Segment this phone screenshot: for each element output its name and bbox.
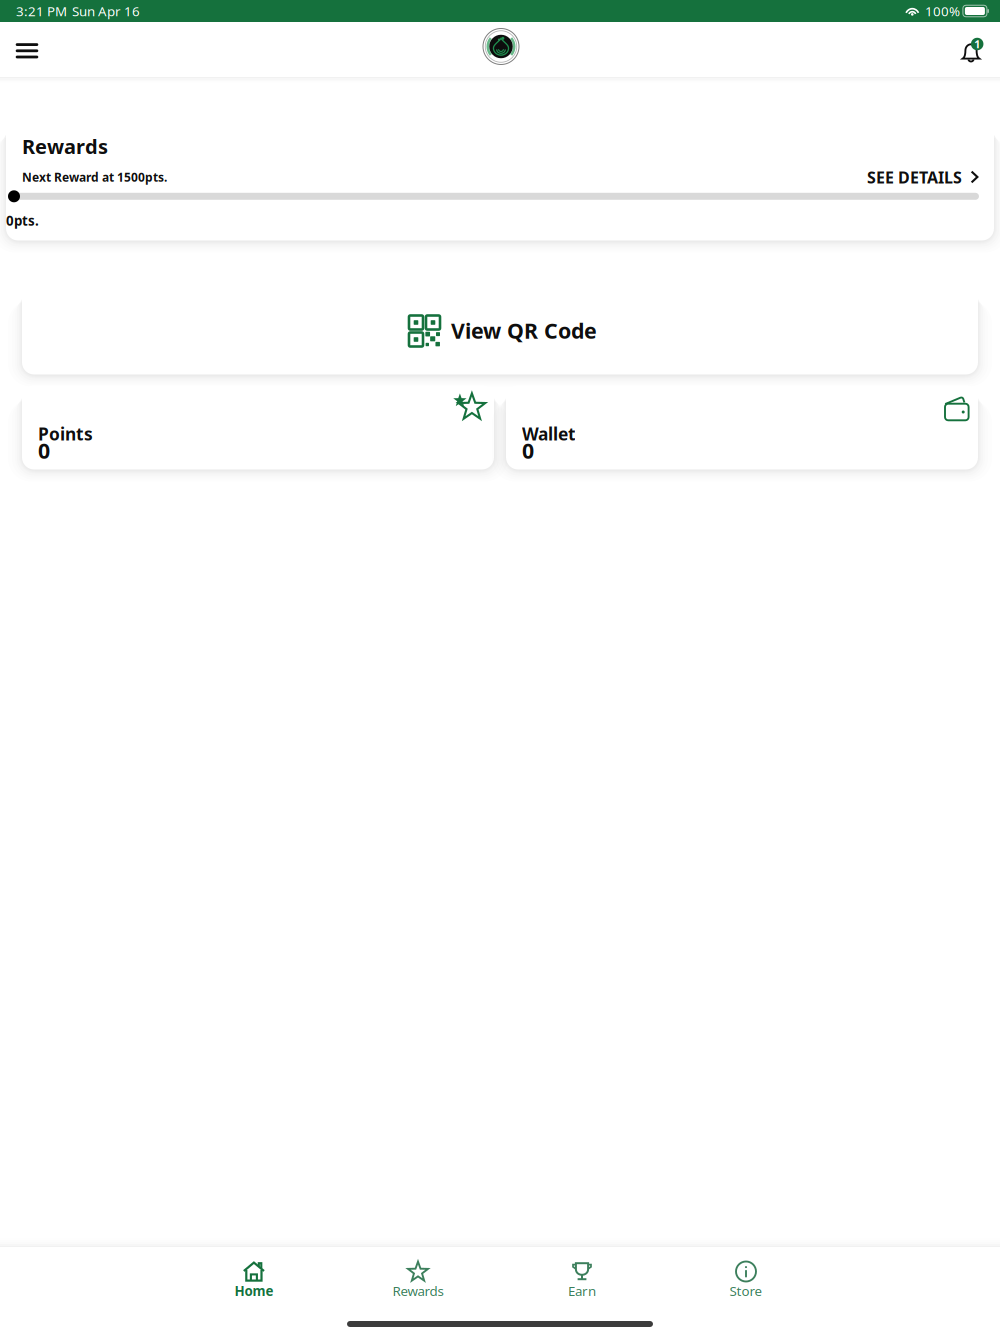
staticText: Earn [568,1282,596,1300]
staticText: 3:21 PM [16,2,67,20]
staticText: Points [38,422,93,445]
staticText: Sun Apr 16 [72,2,140,20]
staticText: Rewards [22,133,108,160]
staticText: View QR Code [451,316,597,345]
staticText: 0pts. [6,212,39,229]
staticText: 100% [925,2,960,20]
staticText: Home [234,1282,273,1300]
staticText: SEE DETAILS [867,167,962,188]
button[interactable]: Home [172,1261,336,1300]
button[interactable]: Notifications [946,22,996,77]
staticText: Store [729,1282,762,1300]
staticText: 0 [522,436,534,464]
staticText: 1 [974,37,980,51]
staticText: 0 [38,436,50,464]
button[interactable]: View QR Code [22,286,978,374]
button[interactable]: SEE DETAILS [867,167,994,188]
staticText: Wallet [522,422,576,445]
button[interactable]: Rewards [336,1261,500,1300]
button[interactable]: Store [664,1261,828,1300]
button[interactable]: Earn [500,1261,664,1300]
staticText: Next Reward at 1500pts. [22,169,167,185]
button[interactable]: Menu [2,22,52,77]
button[interactable]: Wallet [506,385,978,469]
staticText: Rewards [392,1282,443,1300]
button[interactable]: Points [22,385,494,469]
